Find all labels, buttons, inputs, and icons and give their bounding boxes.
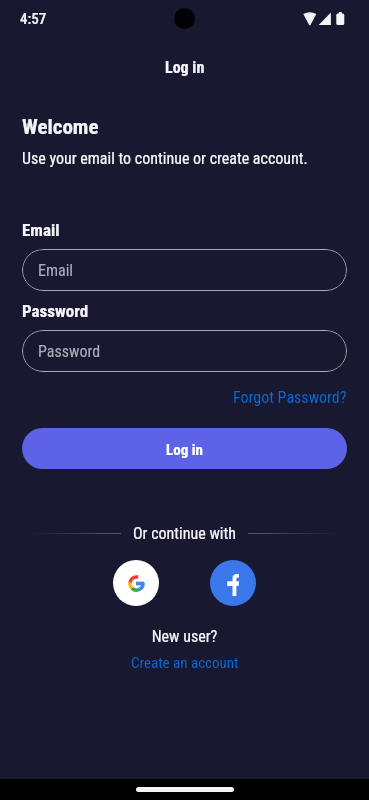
staticText: Email	[22, 220, 60, 240]
staticText: New user?	[0, 627, 369, 646]
button[interactable]: Create an account	[123, 650, 247, 676]
staticText: 4:57	[20, 10, 47, 28]
staticText: Log in	[165, 58, 205, 77]
staticText: Log in	[166, 441, 203, 459]
button[interactable]: Log in	[22, 428, 347, 469]
staticText: Password	[38, 342, 101, 361]
staticText: Email	[38, 261, 74, 280]
button[interactable]: Continue with Google	[113, 560, 159, 606]
button[interactable]: Continue with Facebook	[210, 560, 256, 606]
staticText: Create an account	[131, 654, 239, 672]
button[interactable]: Log in	[151, 55, 219, 80]
staticText: Password	[22, 301, 89, 321]
staticText: Or continue with	[133, 524, 236, 543]
button[interactable]: Forgot Password?	[227, 384, 353, 411]
staticText: Welcome	[22, 115, 99, 140]
button[interactable]: Password	[22, 330, 347, 372]
staticText: Forgot Password?	[233, 388, 347, 407]
staticText: Use your email to continue or create acc…	[22, 149, 308, 168]
button[interactable]: Email	[22, 249, 347, 291]
